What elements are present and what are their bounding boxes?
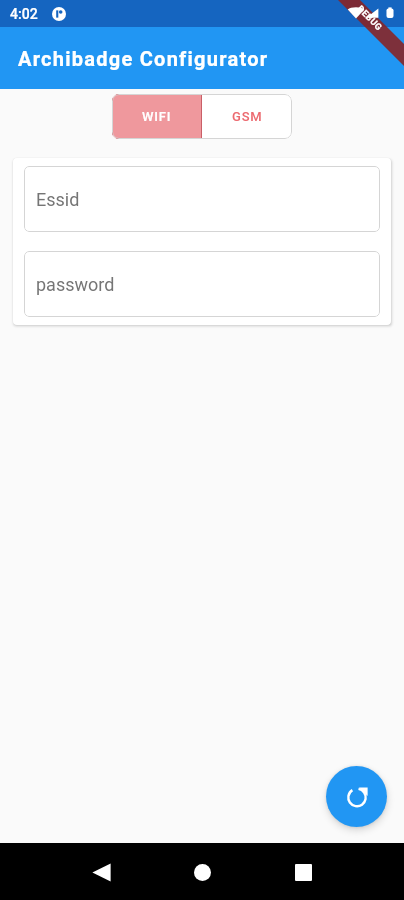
- button[interactable]: Recents: [277, 846, 329, 898]
- staticText: password: [36, 274, 115, 295]
- button[interactable]: Essid: [24, 166, 380, 232]
- button[interactable]: Refresh: [326, 766, 387, 827]
- staticText: 4:02: [10, 6, 38, 22]
- staticText: GSM: [232, 109, 263, 124]
- button[interactable]: GSM: [202, 94, 292, 139]
- button[interactable]: Home: [176, 846, 228, 898]
- staticText: Essid: [36, 189, 80, 210]
- staticText: WIFI: [142, 109, 172, 124]
- button[interactable]: Back: [75, 846, 127, 898]
- staticText: DEBUG: [355, 4, 384, 33]
- button[interactable]: WIFI: [112, 94, 202, 139]
- button[interactable]: password: [24, 251, 380, 317]
- staticText: Archibadge Configurator: [18, 47, 269, 70]
